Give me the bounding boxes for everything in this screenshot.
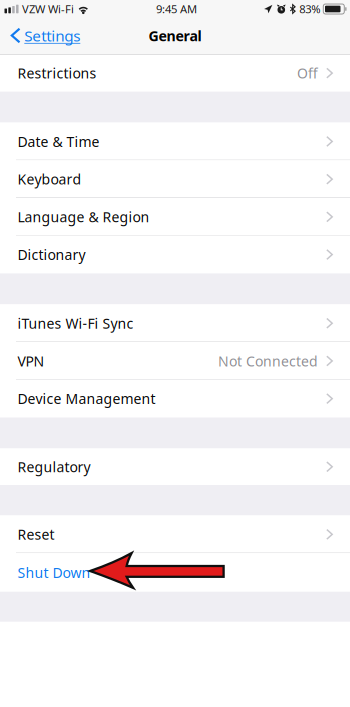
staticText: Not Connected	[218, 351, 318, 370]
staticText: VZW Wi-Fi	[22, 1, 74, 17]
staticText: VPN	[17, 351, 44, 370]
button[interactable]: Device Management	[0, 380, 350, 417]
staticText: Regulatory	[17, 457, 90, 476]
staticText: Reset	[17, 525, 54, 544]
staticText: Language & Region	[17, 207, 149, 226]
button[interactable]: Date & Time	[0, 123, 350, 160]
button[interactable]: Dictionary	[0, 236, 350, 273]
button[interactable]: Language & Region	[0, 198, 350, 236]
staticText: Date & Time	[17, 132, 99, 151]
staticText: iTunes Wi-Fi Sync	[17, 314, 133, 333]
button[interactable]: Restrictions	[0, 55, 350, 92]
button[interactable]: Keyboard	[0, 160, 350, 198]
button[interactable]: VPN	[0, 342, 350, 380]
button[interactable]: Settings	[0, 22, 86, 54]
button[interactable]: Reset	[0, 515, 350, 553]
staticText: Dictionary	[17, 245, 85, 264]
staticText: Settings	[24, 25, 80, 46]
button[interactable]: iTunes Wi-Fi Sync	[0, 304, 350, 342]
staticText: Off	[297, 64, 318, 83]
staticText: Keyboard	[17, 170, 81, 189]
staticText: General	[148, 26, 201, 45]
staticText: Restrictions	[17, 64, 96, 83]
button[interactable]: Shut Down	[0, 553, 350, 592]
staticText: 83%	[299, 1, 320, 17]
button[interactable]: Regulatory	[0, 448, 350, 485]
staticText: Device Management	[17, 389, 155, 408]
staticText: Shut Down	[17, 563, 90, 582]
staticText: 9:45 AM	[156, 1, 197, 17]
